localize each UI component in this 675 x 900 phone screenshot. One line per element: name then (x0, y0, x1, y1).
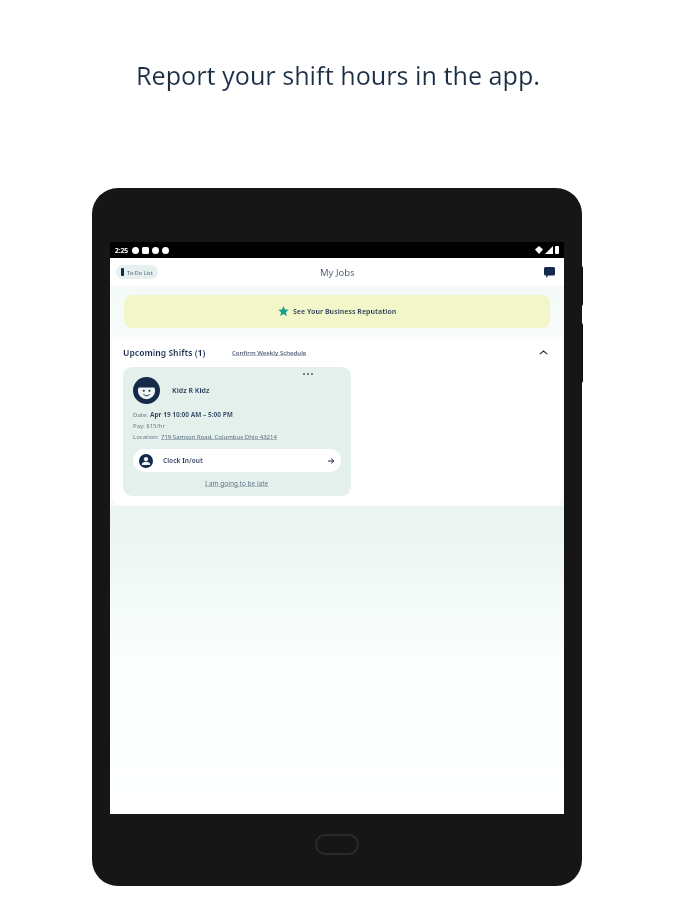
staticText: Kidz R Kidz (172, 386, 210, 396)
button[interactable]: More options (123, 367, 351, 496)
staticText: 2:25 (115, 246, 128, 255)
button[interactable]: To-Do List (116, 265, 158, 279)
button[interactable]: Confirm Weekly Schedule (232, 349, 307, 357)
staticText: Report your shift hours in the app. (136, 58, 540, 92)
staticText: Upcoming Shifts (1) (123, 347, 206, 359)
button[interactable]: Collapse (536, 345, 551, 360)
staticText: Confirm Weekly Schedule (232, 349, 307, 357)
staticText: Location: (133, 433, 161, 441)
staticText: My Jobs (320, 266, 355, 279)
button[interactable]: See Your Business Reputation (124, 295, 550, 328)
button[interactable]: Messages (541, 264, 558, 281)
staticText: I am going to be late (205, 479, 269, 488)
button[interactable]: More options (297, 367, 341, 377)
staticText: Apr 19 10:00 AM – 5:00 PM (150, 410, 233, 419)
staticText: See Your Business Reputation (293, 307, 397, 317)
staticText: 719 Samson Road, Columbus Ohio 43214 (161, 433, 277, 441)
staticText: Pay: $15/hr (133, 422, 165, 430)
staticText: To-Do List (127, 269, 153, 276)
button[interactable]: Clock In/out (133, 449, 341, 472)
button[interactable]: 719 Samson Road, Columbus Ohio 43214 (161, 433, 277, 441)
button[interactable]: I am going to be late (205, 479, 269, 488)
staticText: Date: (133, 411, 150, 419)
staticText: Clock In/out (163, 456, 203, 465)
